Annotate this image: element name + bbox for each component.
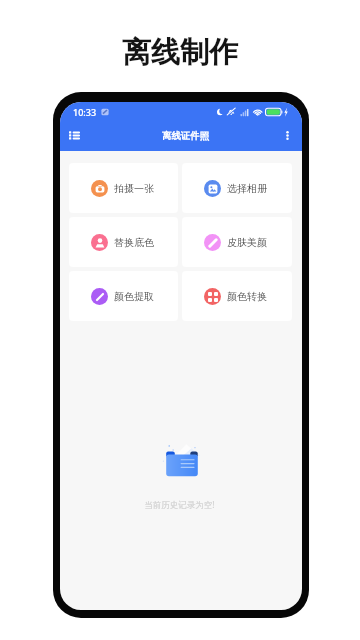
button[interactable]: 拍摄一张 [69, 163, 178, 213]
staticText: 皮肤美颜 [227, 236, 267, 249]
staticText: 颜色提取 [114, 290, 154, 303]
button[interactable]: 颜色提取 [69, 271, 178, 321]
button[interactable]: 皮肤美颜 [182, 217, 292, 267]
button[interactable]: 替换底色 [69, 217, 178, 267]
staticText: 拍摄一张 [114, 182, 154, 195]
button[interactable]: More options [276, 124, 298, 146]
staticText: 替换底色 [114, 236, 154, 249]
button[interactable]: 选择相册 [182, 163, 292, 213]
staticText: 当前历史记录为空! [144, 499, 215, 511]
staticText: 离线制作 [122, 34, 238, 71]
staticText: 离线证件照 [162, 130, 209, 142]
button[interactable]: 颜色转换 [182, 271, 292, 321]
staticText: 颜色转换 [227, 290, 267, 303]
staticText: 选择相册 [227, 182, 267, 195]
button[interactable]: Menu [63, 124, 85, 146]
staticText: 10:33 [73, 106, 97, 118]
